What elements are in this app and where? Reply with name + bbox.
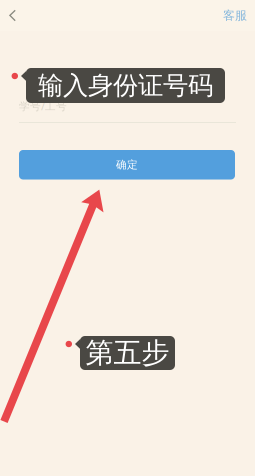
button[interactable]: 客服 (223, 0, 255, 31)
staticText: 输入身份证号码 (38, 70, 213, 101)
button[interactable]: 确定 (19, 150, 235, 179)
button[interactable]: 学号/工号 (19, 95, 236, 123)
button[interactable]: Back (0, 0, 34, 31)
staticText: 学号/工号 (19, 99, 67, 113)
staticText: 第五步 (85, 336, 169, 370)
staticText: 客服 (223, 8, 247, 23)
staticText: 确定 (116, 158, 138, 171)
